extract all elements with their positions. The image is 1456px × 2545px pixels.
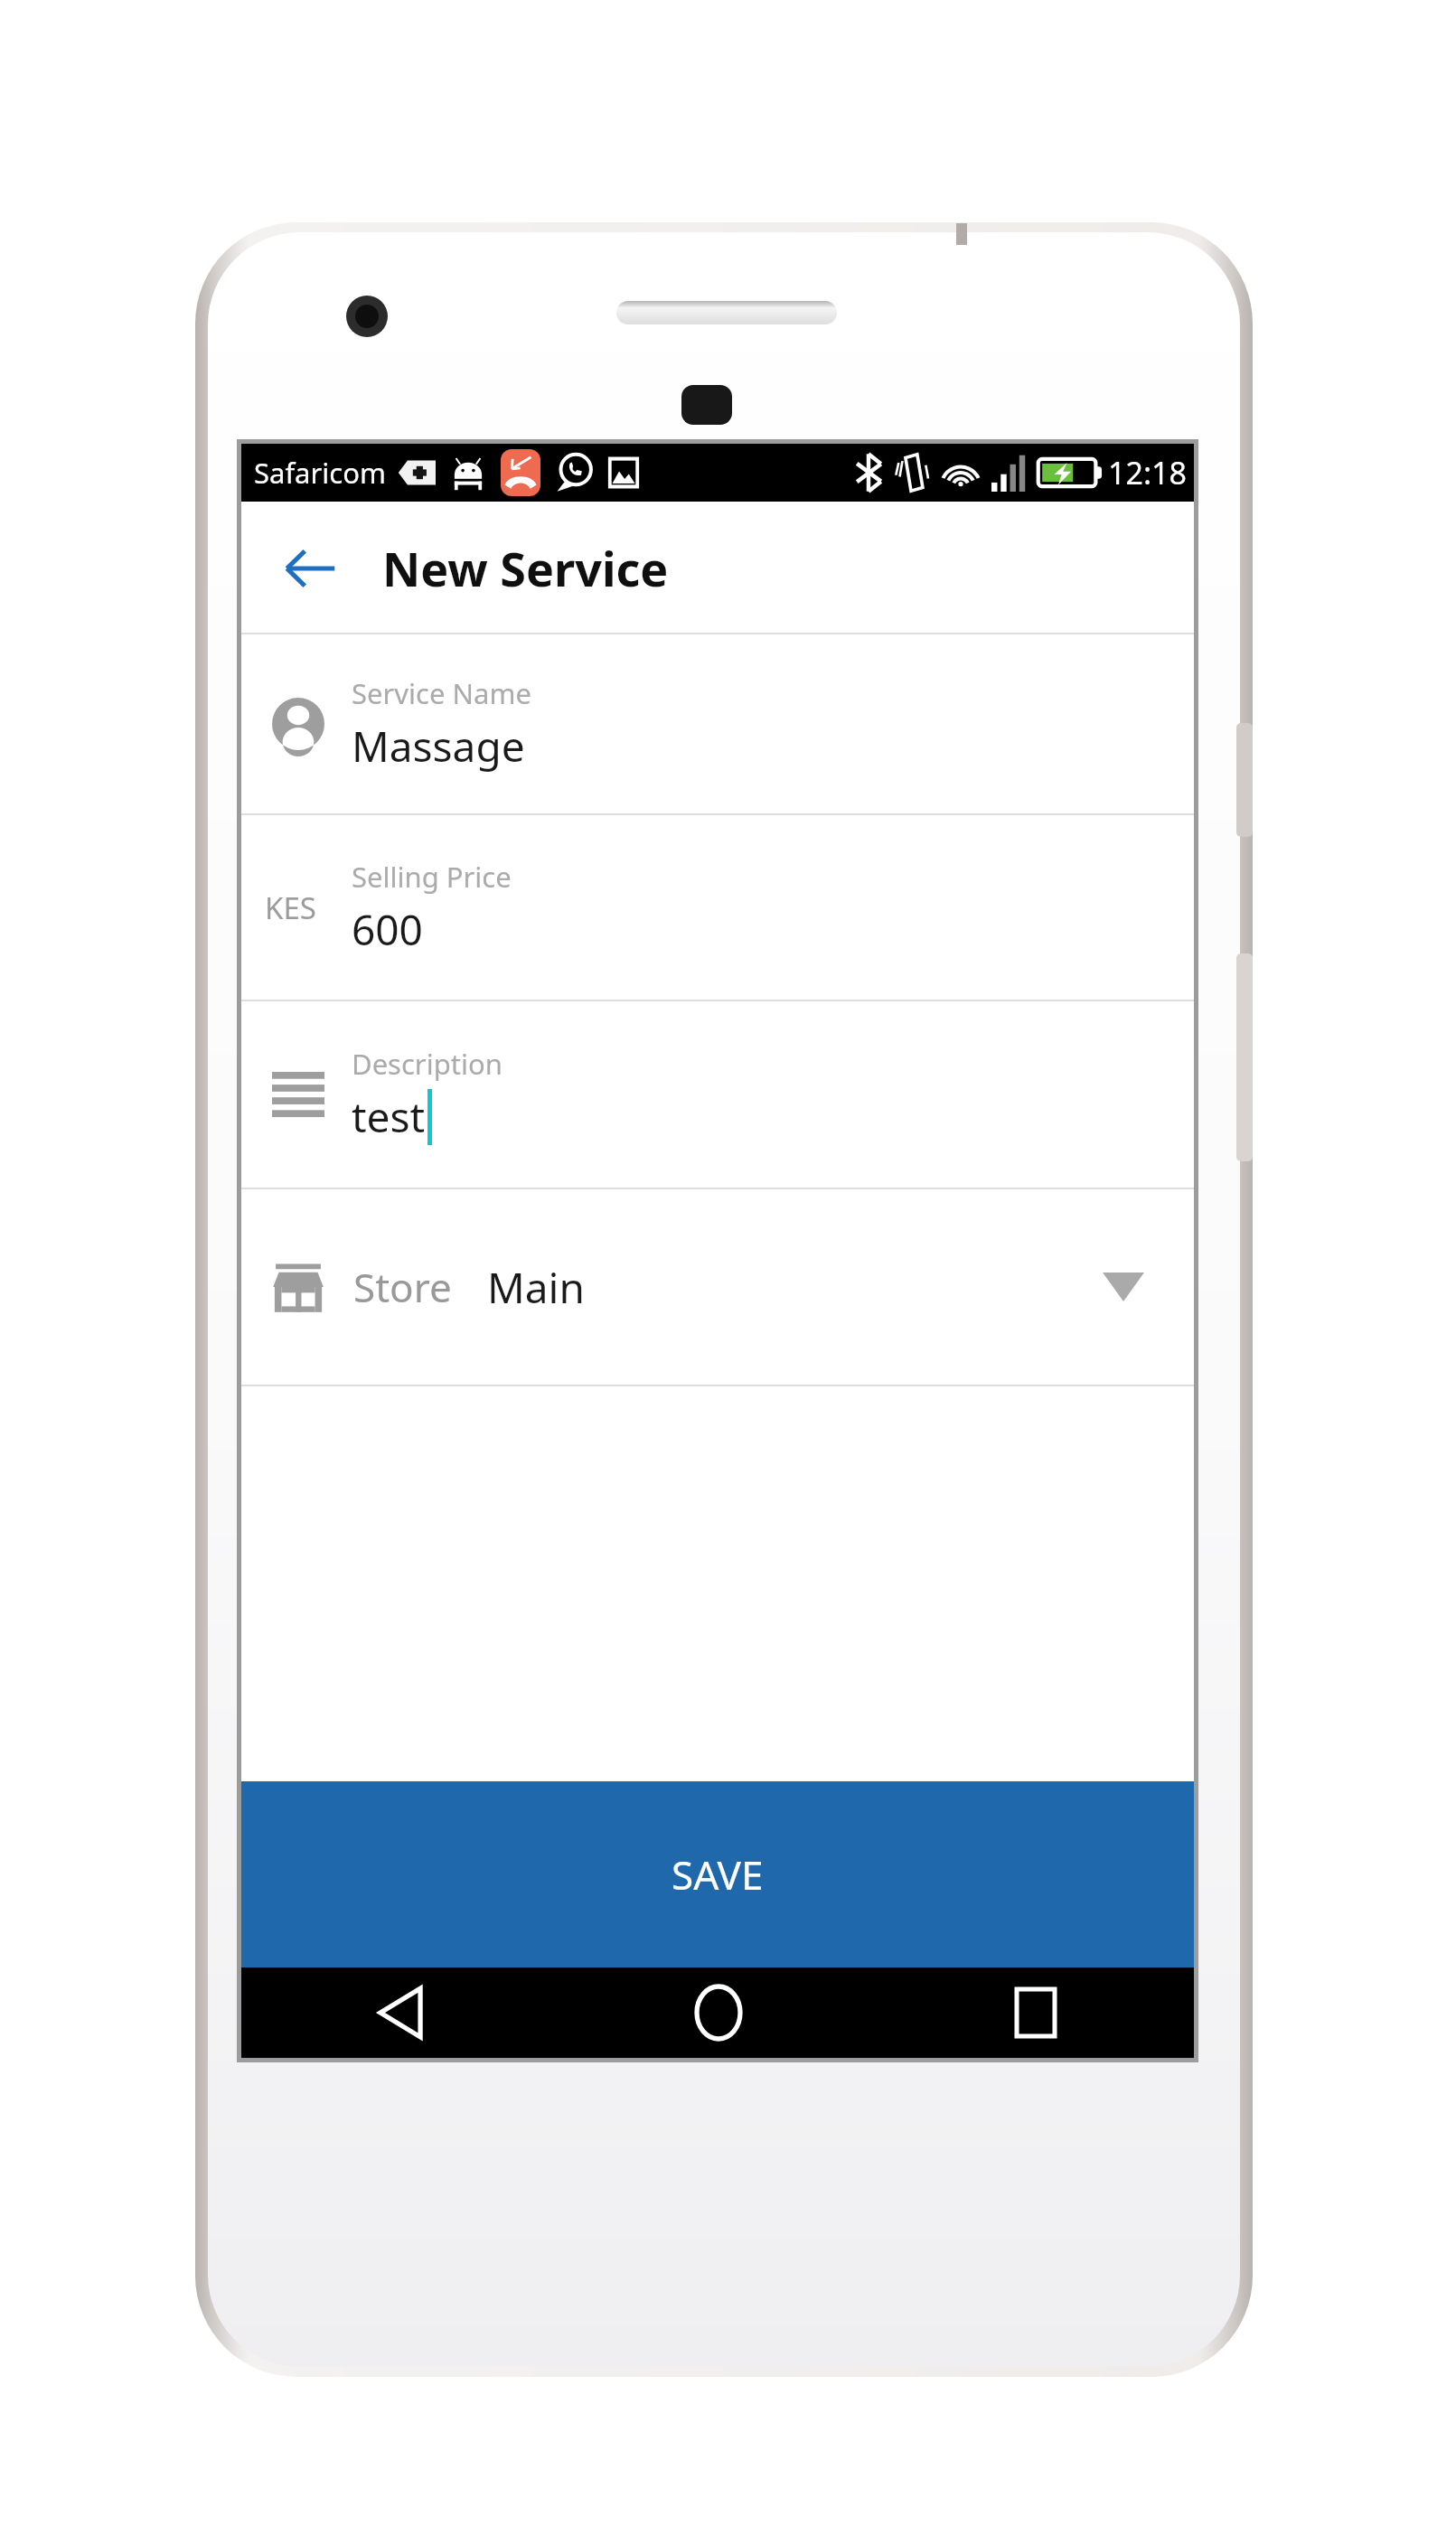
button[interactable]: Store <box>241 1189 1194 1385</box>
staticText: New Service <box>382 536 669 600</box>
staticText: KES <box>265 887 316 928</box>
staticText: 600 <box>352 901 423 958</box>
button[interactable]: Home <box>559 1967 877 2058</box>
button[interactable]: Service Name <box>241 634 1194 813</box>
staticText: Safaricom <box>254 454 386 492</box>
staticText: Massage <box>352 718 525 775</box>
staticText: 12:18 <box>1108 452 1187 493</box>
button[interactable]: Recents <box>877 1967 1194 2058</box>
button[interactable]: Back <box>272 531 348 606</box>
staticText: test <box>352 1088 426 1145</box>
button[interactable]: KES <box>241 815 1194 1000</box>
staticText: Service Name <box>352 674 531 712</box>
staticText: Selling Price <box>352 858 512 896</box>
button[interactable]: Select store <box>1096 1260 1151 1314</box>
button[interactable]: Description <box>241 1001 1194 1188</box>
staticText: Store <box>353 1260 452 1314</box>
staticText: SAVE <box>672 1847 764 1902</box>
staticText: Main <box>487 1259 585 1316</box>
staticText: Description <box>352 1045 503 1083</box>
button[interactable]: SAVE <box>241 1781 1194 1967</box>
button[interactable]: Back <box>241 1967 559 2058</box>
